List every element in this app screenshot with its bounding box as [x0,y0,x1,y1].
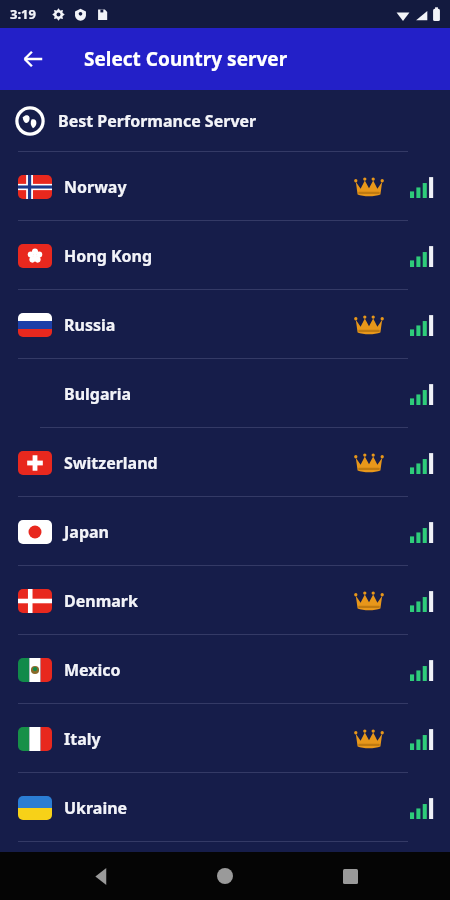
staticText: Norway [64,176,127,198]
button[interactable]: Recents [326,852,374,900]
staticText: Mexico [64,659,121,681]
staticText: Ukraine [64,797,128,819]
button[interactable]: Ukraine [0,773,450,842]
staticText: Bulgaria [64,383,132,405]
staticText: Best Performance Server [58,110,257,132]
button[interactable]: Bulgaria [0,359,450,428]
button[interactable]: Mexico [0,635,450,704]
button[interactable]: Denmark [0,566,450,635]
button[interactable]: Italy [0,704,450,773]
staticText: Japan [64,521,109,543]
staticText: Hong Kong [64,245,153,267]
button[interactable]: Russia [0,290,450,359]
staticText: Select Country server [84,46,288,72]
button[interactable]: Back [12,38,54,80]
staticText: Switzerland [64,452,158,474]
button[interactable]: Hong Kong [0,221,450,290]
button[interactable]: Home [201,852,249,900]
staticText: Russia [64,314,116,336]
staticText: Italy [64,728,101,750]
button[interactable]: Switzerland [0,428,450,497]
staticText: 3:19 [10,5,36,23]
button[interactable]: Back [77,852,125,900]
button[interactable]: Japan [0,497,450,566]
button[interactable]: Norway [0,152,450,221]
staticText: Denmark [64,590,138,612]
button[interactable]: Best Performance Server [0,90,450,152]
